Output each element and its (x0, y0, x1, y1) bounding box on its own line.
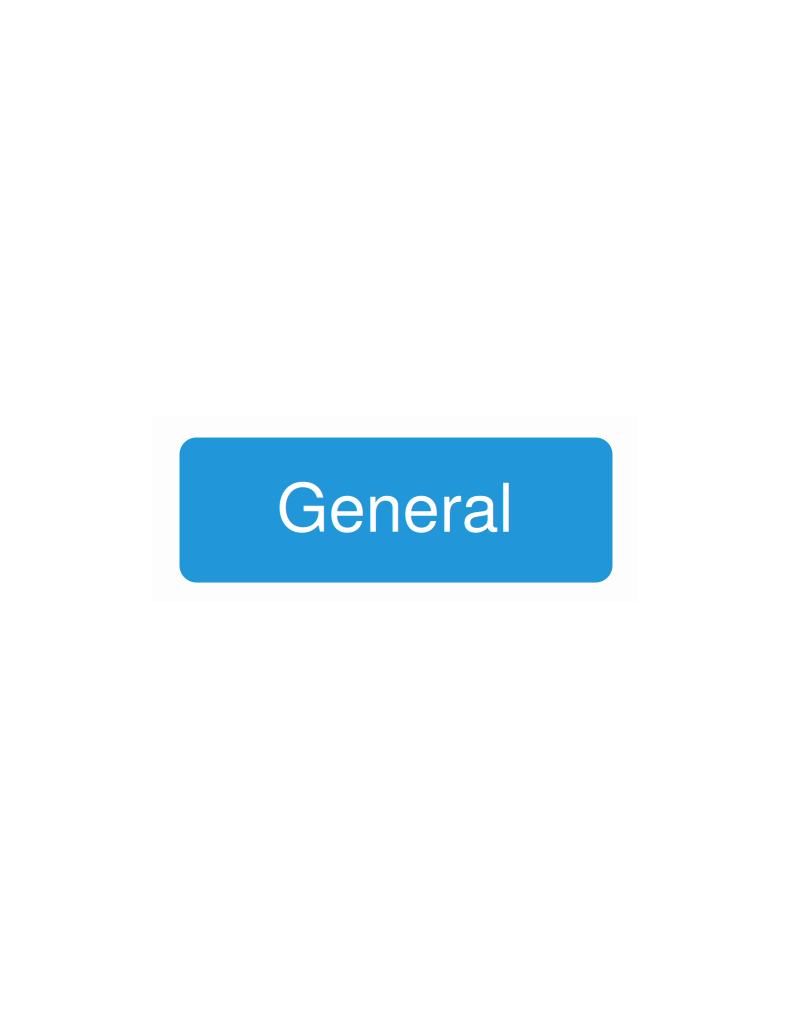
staticText: General (276, 455, 513, 551)
button[interactable]: General (179, 437, 612, 582)
